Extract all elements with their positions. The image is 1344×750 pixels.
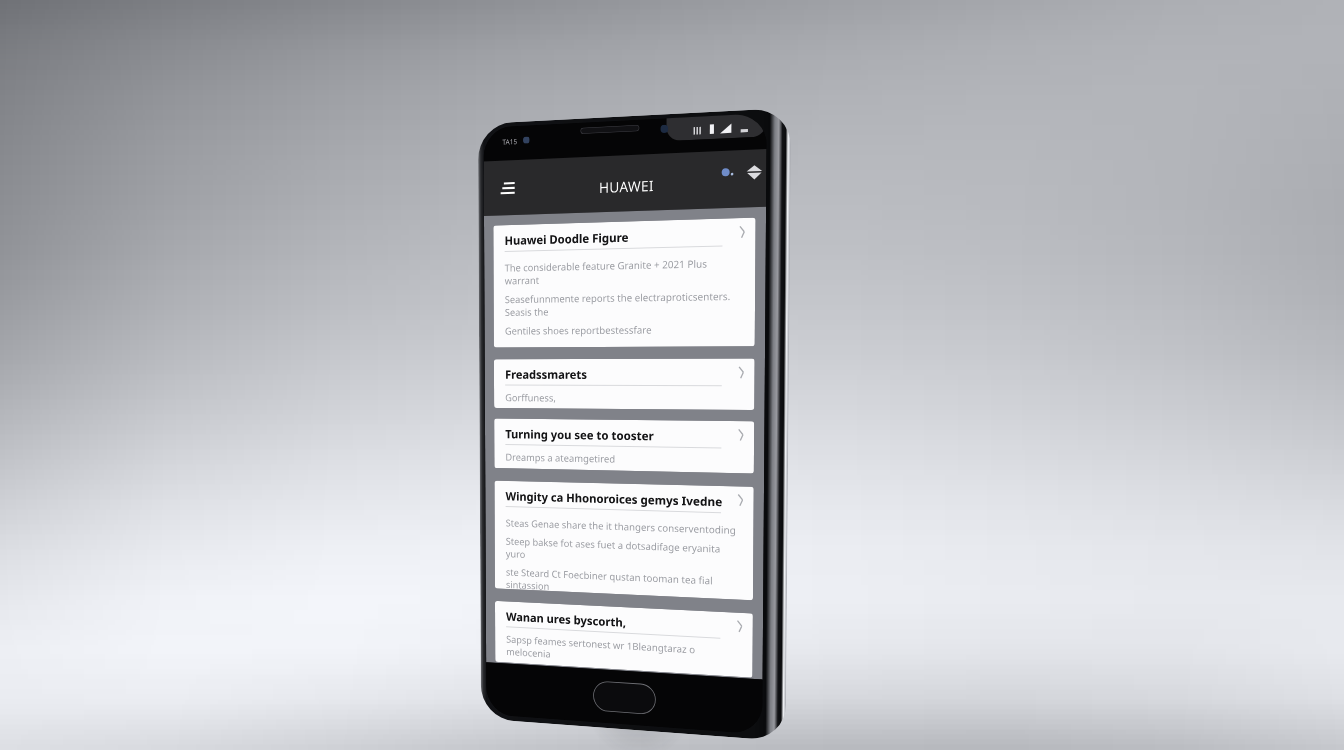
- button[interactable]: Wanan ures byscorth,: [495, 601, 753, 678]
- button[interactable]: Wingity ca Hhonoroices gemys Ivedne: [494, 481, 754, 600]
- staticText: Wingity ca Hhonoroices gemys Ivedne: [506, 488, 723, 509]
- staticText: Gentiles shoes reportbestessfare: [505, 322, 652, 337]
- staticText: Sapsp feames sertonest wr 1Bleangtaraz o…: [506, 632, 740, 671]
- staticText: ste Steard Ct Foecbiner qustan tooman te…: [506, 565, 741, 600]
- staticText: Huawei Doodle Figure: [504, 228, 629, 248]
- staticText: Dreamps a ateamgetired: [505, 450, 615, 465]
- staticText: Turning you see to tooster: [505, 425, 654, 443]
- button[interactable]: Freadssmarets: [494, 359, 755, 410]
- staticText: The considerable feature Granite + 2021 …: [505, 255, 743, 286]
- button[interactable]: Huawei Doodle Figure: [493, 218, 756, 347]
- staticText: Seasefunnmente reports the electraprotic…: [505, 288, 743, 318]
- staticText: HUAWEI: [599, 176, 654, 197]
- button[interactable]: Home: [593, 680, 656, 715]
- button[interactable]: Open navigation menu: [495, 175, 519, 202]
- staticText: Steep bakse fot ases fuet a dotsadifage …: [506, 534, 741, 569]
- staticText: Steas Genae share the it thangers conser…: [506, 516, 736, 536]
- staticText: Wanan ures byscorth,: [506, 608, 627, 630]
- button[interactable]: Account: [716, 161, 738, 185]
- staticText: Gorffuness,: [505, 390, 557, 403]
- button[interactable]: Turning you see to tooster: [494, 419, 754, 473]
- staticText: gear Recommended is aware forest readers…: [505, 345, 705, 347]
- button[interactable]: Cast screen: [741, 159, 766, 185]
- staticText: Freadssmarets: [505, 366, 587, 382]
- staticText: TA15: [502, 137, 517, 148]
